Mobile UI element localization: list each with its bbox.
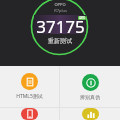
staticText: 37175: [36, 15, 85, 34]
button[interactable]: HTML5测试: [0, 66, 59, 107]
staticText: HTML5测试: [16, 93, 43, 100]
staticText: 重新测试: [48, 37, 72, 45]
button[interactable]: 重新测试: [48, 37, 72, 45]
staticText: OPPO: [54, 2, 66, 7]
button[interactable]: 排行榜: [60, 108, 120, 120]
button[interactable]: 我的设备: [0, 108, 59, 120]
button[interactable]: 辨别真伪: [60, 66, 120, 107]
staticText: 辨别真伪: [80, 94, 100, 100]
staticText: 44%: [79, 16, 85, 20]
staticText: R7plus: [54, 8, 67, 13]
